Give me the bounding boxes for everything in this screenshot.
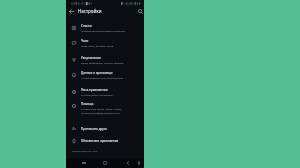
button[interactable]: Обновления приложения — [66, 135, 144, 146]
button[interactable]: Язык приложения — [66, 85, 144, 98]
staticText: Списки — [81, 24, 92, 28]
staticText: Управление контактами и группами — [81, 29, 126, 32]
staticText: Использование сети, автозагрузка — [81, 76, 123, 79]
button[interactable]: Помощь — [66, 99, 144, 115]
button[interactable]: Home — [101, 159, 109, 167]
staticText: Русский (язык устройства) — [81, 93, 113, 96]
staticText: Обновления приложения — [81, 139, 119, 143]
button[interactable]: Switch keyboard — [135, 159, 143, 167]
button[interactable]: Back — [67, 7, 75, 15]
staticText: Уведомления — [81, 56, 101, 60]
button[interactable]: Списки — [66, 21, 144, 34]
staticText: Пригласить друга — [81, 127, 107, 131]
staticText: Справочный центр, связь с нами, политика… — [81, 107, 127, 115]
staticText: Тема, обои, история чатов — [81, 44, 114, 47]
button[interactable]: Search — [136, 7, 144, 15]
staticText: Другие продукты Meta — [72, 150, 98, 153]
button[interactable]: Чаты — [66, 36, 144, 49]
button[interactable]: Back — [124, 159, 132, 167]
staticText: Помощь — [81, 102, 94, 106]
staticText: Звуки сообщений, групп и звонков — [81, 61, 124, 64]
button[interactable]: Уведомления — [66, 53, 144, 66]
staticText: Чаты — [81, 39, 89, 43]
staticText: Данные и хранилище — [81, 71, 113, 75]
staticText: Язык приложения — [81, 88, 108, 92]
staticText: Настройки — [78, 8, 102, 14]
button[interactable]: Данные и хранилище — [66, 68, 144, 81]
button[interactable]: Пригласить друга — [66, 123, 144, 134]
button[interactable]: Recent apps — [80, 159, 88, 167]
